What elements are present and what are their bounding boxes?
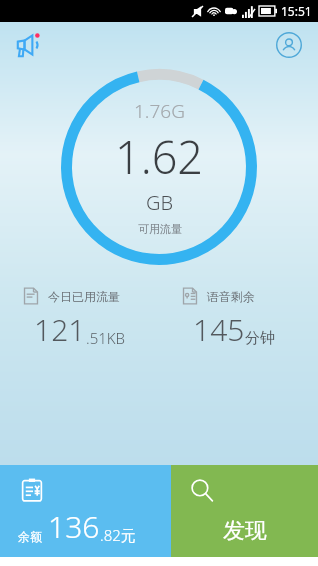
button[interactable]: 发现 <box>171 465 318 557</box>
button[interactable]: 今日已用流量 <box>0 287 159 350</box>
staticText: 1.62 <box>115 126 204 187</box>
staticText: 145 <box>193 309 245 350</box>
staticText: 可用流量 <box>138 222 182 236</box>
button[interactable]: 语音剩余 <box>159 287 318 350</box>
button[interactable]: Announcements <box>12 28 46 62</box>
staticText: 1.76G <box>134 98 185 124</box>
button[interactable]: 余额 <box>0 465 171 557</box>
staticText: .51KB <box>86 328 126 348</box>
staticText: 语音剩余 <box>207 289 255 304</box>
staticText: .82元 <box>100 525 136 545</box>
staticText: 发现 <box>223 517 267 545</box>
staticText: 余额 <box>18 529 42 544</box>
staticText: 今日已用流量 <box>48 289 120 304</box>
staticText: GB <box>146 189 174 216</box>
staticText: 15:51 <box>281 3 312 19</box>
button[interactable]: Profile <box>272 28 306 62</box>
staticText: 121 <box>34 309 86 350</box>
staticText: 分钟 <box>245 329 275 348</box>
staticText: 136 <box>48 506 100 547</box>
